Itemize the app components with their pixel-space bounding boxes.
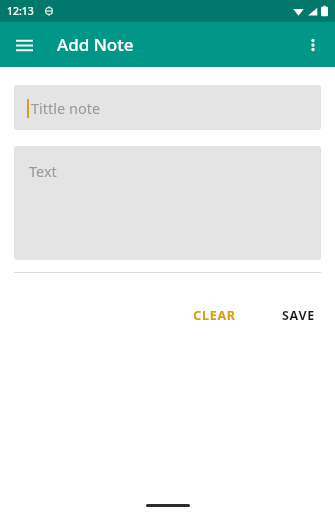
button[interactable]: Text: [14, 146, 321, 260]
button[interactable]: Open navigation menu: [6, 27, 42, 63]
staticText: 12:13: [7, 4, 34, 18]
button[interactable]: More options: [295, 27, 331, 63]
staticText: SAVE: [282, 307, 315, 324]
staticText: Add Note: [57, 33, 134, 56]
staticText: Tittle note: [31, 98, 101, 118]
button[interactable]: Tittle note: [14, 85, 321, 130]
button[interactable]: SAVE: [276, 301, 321, 330]
button[interactable]: CLEAR: [181, 301, 248, 330]
staticText: CLEAR: [193, 307, 236, 324]
staticText: Text: [29, 161, 57, 181]
